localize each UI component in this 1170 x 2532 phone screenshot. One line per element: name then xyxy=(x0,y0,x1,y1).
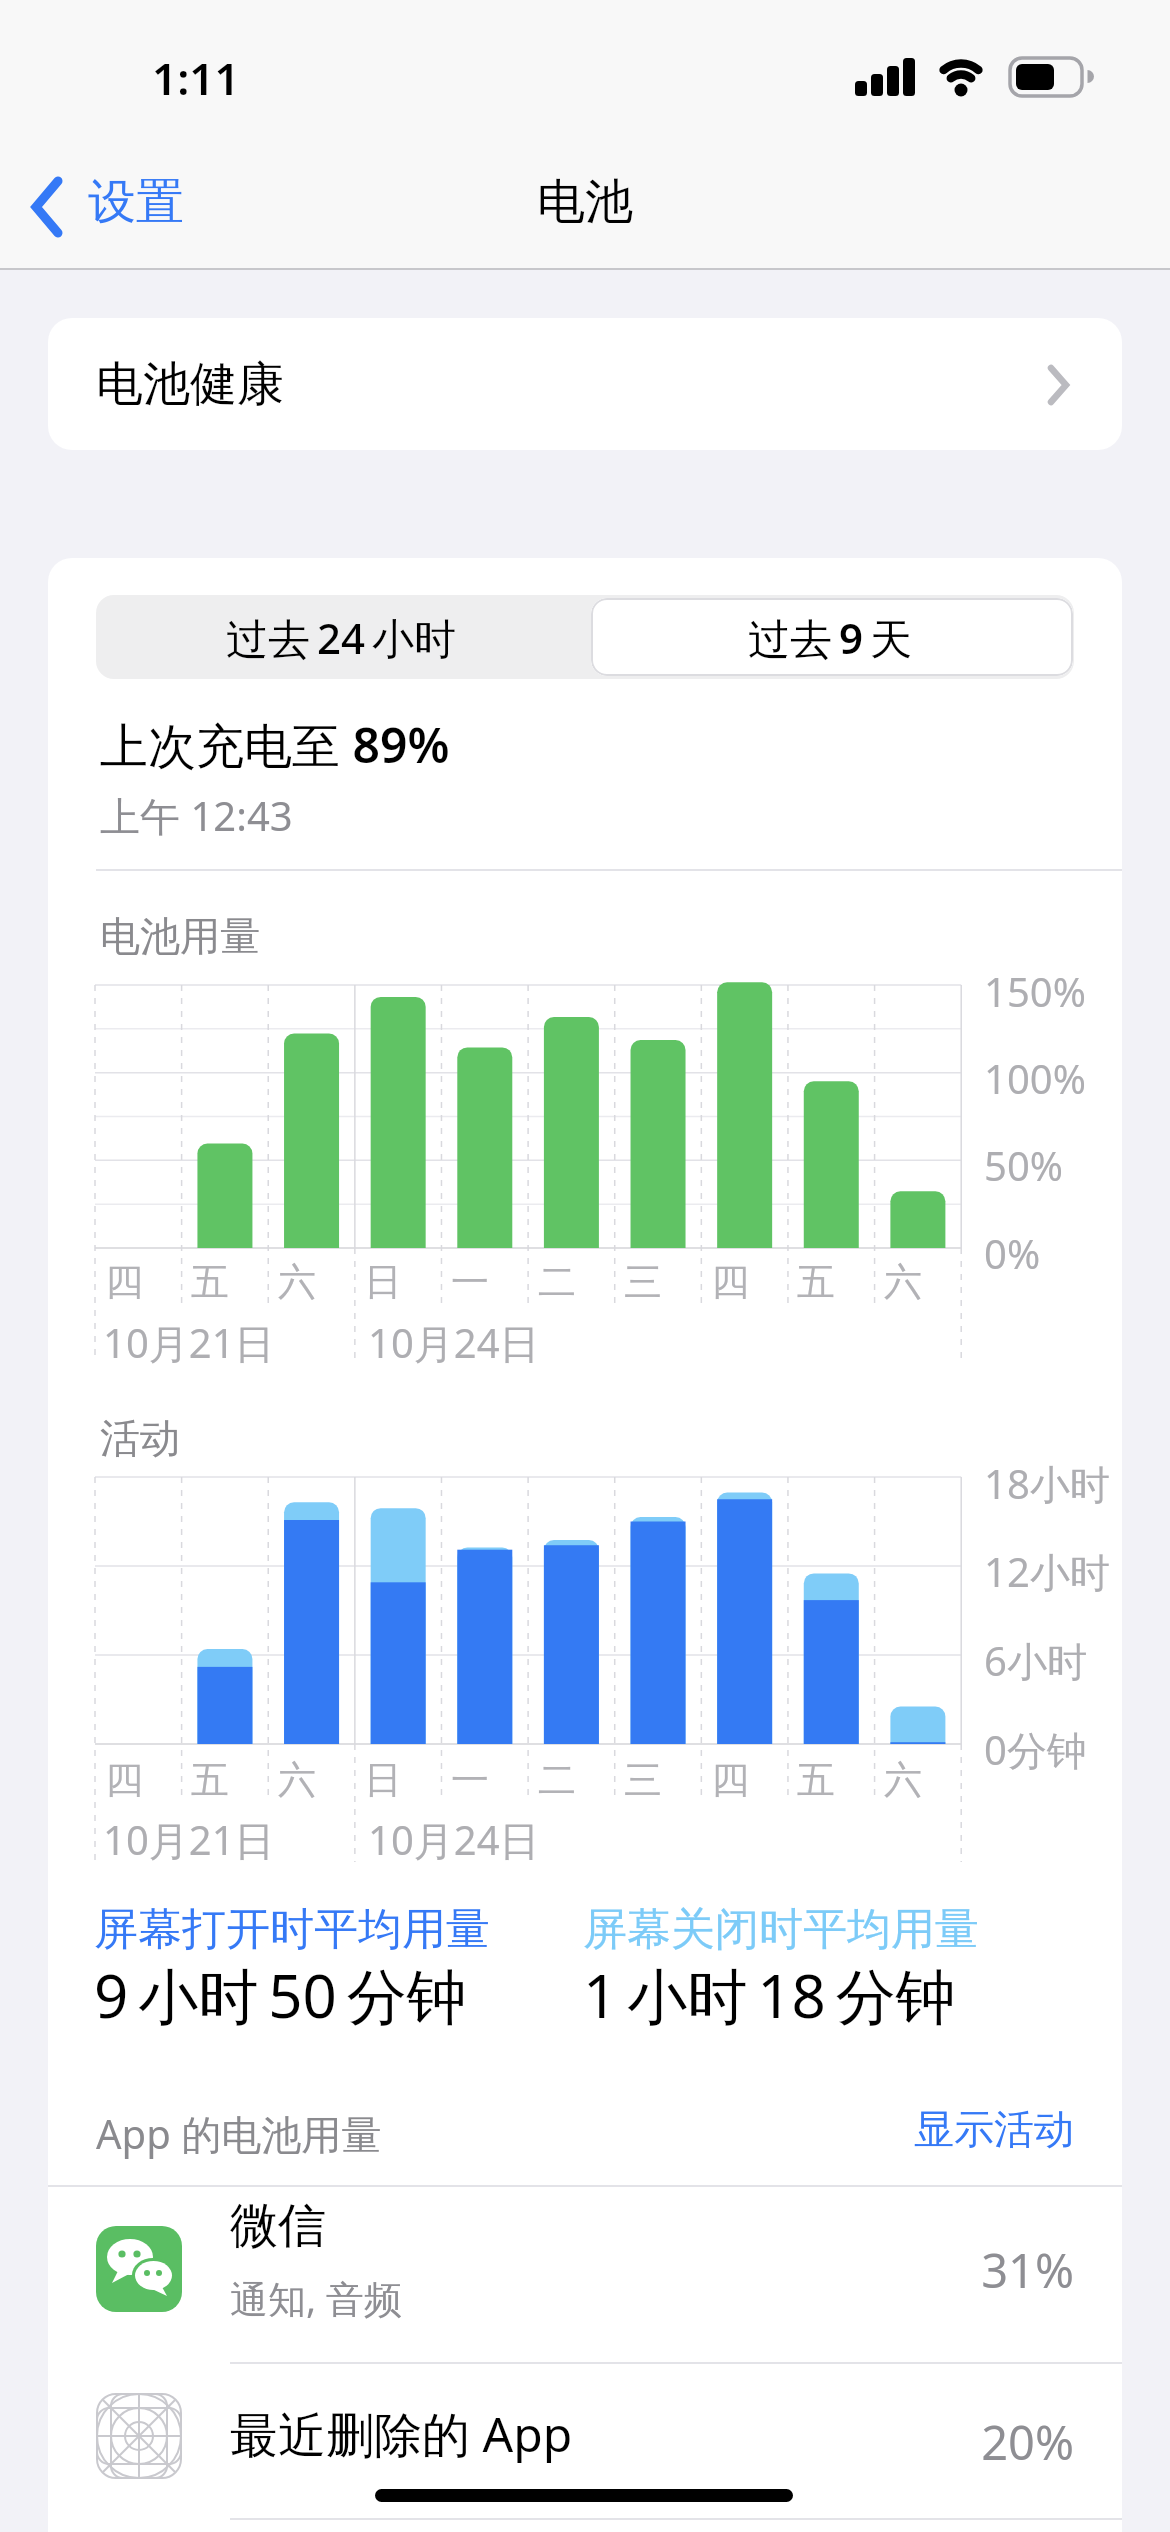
staticText: 1 小时 18 分钟 xyxy=(583,1954,956,2036)
staticText: 活动 xyxy=(100,1413,180,1463)
staticText: 屏幕关闭时平均用量 xyxy=(583,1902,979,1957)
staticText: 10月21日 xyxy=(103,1315,275,1370)
staticText: 电池 xyxy=(537,172,633,232)
staticText: 四 xyxy=(711,1756,749,1804)
button[interactable]: 设置 xyxy=(88,172,184,232)
staticText: 0% xyxy=(984,1226,1041,1280)
staticText: 12小时 xyxy=(984,1544,1110,1599)
staticText: 六 xyxy=(278,1258,316,1306)
staticText: 最近删除的 App xyxy=(230,2401,573,2467)
staticText: 四 xyxy=(105,1258,143,1306)
staticText: 电池健康 xyxy=(96,355,284,414)
button[interactable] xyxy=(48,2186,1122,2362)
staticText: 一 xyxy=(451,1258,489,1306)
staticText: 三 xyxy=(624,1756,662,1804)
staticText: 五 xyxy=(797,1756,835,1804)
button[interactable]: 过去 24 小时 xyxy=(96,595,585,679)
staticText: 四 xyxy=(711,1258,749,1306)
button[interactable]: 过去 9 天 xyxy=(585,595,1074,679)
staticText: 过去 24 小时 xyxy=(226,609,456,666)
staticText: 日 xyxy=(364,1756,402,1804)
staticText: 1:11 xyxy=(152,48,240,108)
staticText: App 的电池用量 xyxy=(96,2106,382,2161)
staticText: 0分钟 xyxy=(984,1722,1087,1777)
staticText: 18小时 xyxy=(984,1456,1110,1511)
staticText: 五 xyxy=(191,1756,229,1804)
staticText: 六 xyxy=(278,1756,316,1804)
staticText: 100% xyxy=(984,1051,1086,1105)
button[interactable] xyxy=(48,2363,1122,2523)
staticText: 6小时 xyxy=(984,1633,1087,1688)
staticText: 屏幕打开时平均用量 xyxy=(94,1902,490,1957)
staticText: 50% xyxy=(984,1138,1063,1192)
staticText: 通知, 音频 xyxy=(230,2272,403,2324)
staticText: 电池用量 xyxy=(100,911,260,961)
staticText: 显示活动 xyxy=(914,2104,1074,2154)
staticText: 五 xyxy=(191,1258,229,1306)
staticText: 10月21日 xyxy=(103,1812,275,1867)
staticText: 四 xyxy=(105,1756,143,1804)
staticText: 六 xyxy=(884,1756,922,1804)
staticText: 三 xyxy=(624,1258,662,1306)
staticText: 150% xyxy=(984,964,1086,1018)
staticText: 10月24日 xyxy=(368,1812,540,1867)
staticText: 二 xyxy=(538,1756,576,1804)
staticText: 二 xyxy=(538,1258,576,1306)
staticText: 日 xyxy=(364,1258,402,1306)
staticText: 31% xyxy=(981,2238,1074,2302)
staticText: 五 xyxy=(797,1258,835,1306)
staticText: 9 小时 50 分钟 xyxy=(94,1954,467,2036)
staticText: 上午 12:43 xyxy=(100,788,293,843)
staticText: 过去 9 天 xyxy=(748,609,912,666)
button[interactable]: 电池健康 xyxy=(48,318,1122,450)
staticText: 上次充电至 89% xyxy=(100,712,450,778)
button[interactable] xyxy=(32,179,62,235)
staticText: 一 xyxy=(451,1756,489,1804)
staticText: 微信 xyxy=(230,2196,326,2256)
staticText: 设置 xyxy=(88,172,184,232)
button[interactable]: 显示活动 xyxy=(574,2104,1074,2154)
staticText: 20% xyxy=(981,2410,1074,2474)
staticText: 六 xyxy=(884,1258,922,1306)
staticText: 10月24日 xyxy=(368,1315,540,1370)
